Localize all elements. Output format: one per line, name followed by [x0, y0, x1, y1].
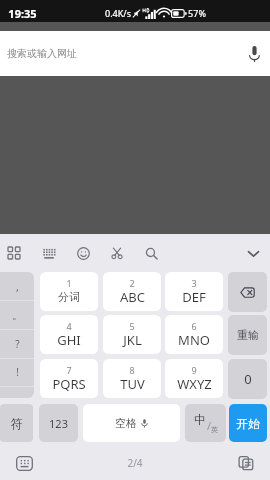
staticText: 重输 [237, 328, 259, 342]
button[interactable]: 符 [0, 404, 33, 442]
staticText: 。 [12, 308, 23, 322]
staticText: 4 [66, 320, 72, 332]
staticText: PQRS [52, 375, 86, 393]
staticText: 0 [244, 370, 252, 388]
button[interactable]: Keyboard layouts [0, 238, 29, 268]
staticText: 2 [129, 277, 135, 289]
staticText: ? [15, 337, 20, 351]
button[interactable]: 5 [103, 315, 161, 354]
button[interactable]: 123 [39, 404, 78, 442]
staticText: MNO [178, 331, 210, 349]
staticText: 符 [11, 416, 23, 431]
button[interactable]: , [0, 272, 34, 300]
button[interactable]: Clipboard [233, 450, 259, 476]
button[interactable]: ! [0, 358, 34, 386]
button[interactable]: 4 [40, 315, 98, 354]
button[interactable]: 9 [165, 359, 223, 398]
staticText: 搜索或输入网址 [7, 47, 77, 60]
staticText: 中 [194, 412, 206, 427]
staticText: ! [16, 365, 19, 379]
staticText: 英 [211, 425, 218, 434]
button[interactable]: 重输 [228, 315, 267, 355]
staticText: 123 [49, 416, 68, 431]
staticText: 57% [188, 7, 206, 19]
staticText: ABC [120, 288, 145, 306]
staticText: DEF [182, 288, 206, 306]
button[interactable]: Switch keyboard [11, 450, 37, 476]
button[interactable]: 中 [185, 404, 226, 442]
staticText: TUV [120, 375, 145, 393]
staticText: 5 [129, 320, 135, 332]
staticText: 2/4 [127, 456, 143, 470]
staticText: JKL [123, 331, 142, 349]
staticText: / [207, 418, 212, 433]
staticText: 1 [66, 277, 72, 289]
button[interactable]: ? [0, 329, 34, 358]
staticText: 8 [129, 364, 135, 376]
button[interactable]: 。 [0, 300, 34, 329]
button[interactable]: Hide keyboard [238, 238, 268, 268]
button[interactable]: 空格 [83, 404, 180, 442]
button[interactable]: 6 [165, 315, 223, 354]
staticText: , [16, 279, 19, 294]
button[interactable]: 0 [228, 359, 267, 399]
button[interactable]: 8 [103, 359, 161, 398]
staticText: GHI [57, 331, 81, 349]
button[interactable]: Backspace [228, 272, 267, 312]
staticText: 19:35 [8, 6, 37, 21]
staticText: 开始 [236, 416, 260, 431]
button[interactable]: 3 [165, 272, 223, 311]
button[interactable]: Handwriting [34, 238, 64, 268]
staticText: 分词 [58, 290, 80, 304]
button[interactable]: 1 [40, 272, 98, 311]
staticText: 7 [66, 364, 72, 376]
button[interactable]: Emoji [68, 238, 98, 268]
button[interactable]: Voice search [239, 39, 269, 69]
staticText: 9 [191, 364, 197, 376]
staticText: 0.4K/s [105, 7, 131, 19]
button[interactable]: Cut [102, 238, 132, 268]
staticText: 空格 [115, 416, 137, 430]
button[interactable]: 2 [103, 272, 161, 311]
staticText: 6 [191, 320, 197, 332]
button[interactable]: 7 [40, 359, 98, 398]
button[interactable]: Search [136, 238, 166, 268]
button[interactable]: 开始 [229, 404, 267, 442]
staticText: 3 [191, 277, 197, 289]
staticText: WXYZ [177, 375, 212, 393]
